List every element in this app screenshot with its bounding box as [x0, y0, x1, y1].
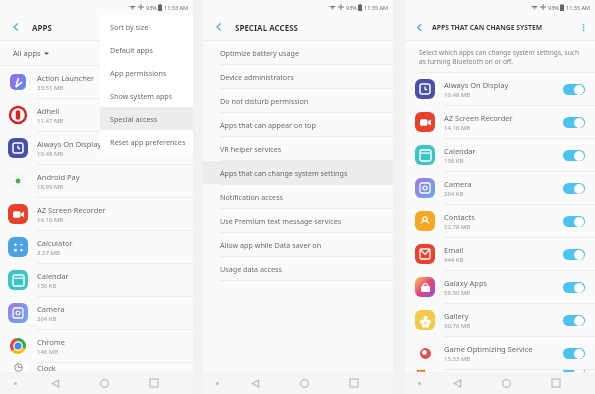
staticText: Default apps: [110, 45, 153, 55]
button[interactable]: Default apps: [100, 38, 193, 61]
button[interactable]: Sort by size: [100, 15, 193, 38]
staticText: Adhell: [37, 106, 60, 116]
button[interactable]: Galaxy Apps: [405, 271, 595, 303]
button[interactable]: Back: [433, 372, 482, 394]
button[interactable]: Toggle on: [563, 348, 585, 359]
staticText: App permissions: [110, 68, 167, 78]
button[interactable]: Optimize battery usage: [203, 41, 393, 64]
button[interactable]: Toggle on: [563, 150, 585, 161]
staticText: Select which apps can change system sett…: [419, 48, 580, 66]
button[interactable]: Game Optimizing Service: [405, 337, 595, 369]
staticText: 93%: [146, 4, 157, 11]
staticText: 15.53 MB: [444, 355, 471, 363]
button[interactable]: Calculator: [0, 231, 193, 263]
button[interactable]: Always On Display: [405, 73, 595, 105]
button[interactable]: Camera: [0, 297, 193, 329]
staticText: APPS THAT CAN CHANGE SYSTEM SETTINGS: [432, 23, 576, 32]
staticText: Reset app preferences: [110, 137, 186, 147]
staticText: Action Launcher: [37, 73, 95, 83]
button[interactable]: Google: [405, 370, 595, 372]
staticText: 59.50 MB: [444, 289, 471, 297]
staticText: Always On Display: [444, 80, 509, 90]
button[interactable]: Use Premium text message services: [203, 209, 393, 232]
staticText: Special access: [110, 114, 158, 124]
button[interactable]: Clock: [0, 363, 193, 372]
button[interactable]: Special access: [100, 107, 193, 130]
button[interactable]: Chrome: [0, 330, 193, 362]
button[interactable]: Usage data access: [203, 257, 393, 280]
button[interactable]: Back: [211, 19, 227, 35]
staticText: Gallery: [444, 311, 469, 321]
button[interactable]: Recents: [531, 372, 580, 394]
button[interactable]: Back: [412, 20, 426, 34]
staticText: Device administrators: [220, 72, 294, 82]
button[interactable]: Toggle on: [563, 370, 585, 372]
button[interactable]: Recents: [329, 372, 378, 394]
staticText: APPS: [32, 22, 52, 33]
staticText: 93%: [548, 4, 559, 11]
button[interactable]: Apps that can appear on top: [203, 113, 393, 136]
button[interactable]: Reset app preferences: [100, 130, 193, 153]
button[interactable]: Calendar: [0, 264, 193, 296]
button[interactable]: VR helper services: [203, 137, 393, 160]
staticText: 146 MB: [37, 348, 59, 356]
button[interactable]: Toggle on: [563, 84, 585, 95]
button[interactable]: Do not disturb permission: [203, 89, 393, 112]
staticText: 3.57 MB: [37, 249, 60, 257]
staticText: 264 KB: [37, 315, 57, 323]
button[interactable]: Back: [31, 372, 80, 394]
button[interactable]: More options: [576, 20, 590, 34]
button[interactable]: Toggle on: [563, 315, 585, 326]
staticText: 444 KB: [444, 256, 464, 264]
button[interactable]: Notification access: [203, 185, 393, 208]
staticText: Contacts: [444, 212, 475, 222]
button[interactable]: Home: [280, 372, 329, 394]
button[interactable]: Action Launcher: [0, 66, 193, 98]
button[interactable]: Toggle on: [563, 216, 585, 227]
button[interactable]: Toggle on: [563, 249, 585, 260]
button[interactable]: Home: [482, 372, 531, 394]
button[interactable]: Home: [80, 372, 129, 394]
button[interactable]: All apps: [0, 41, 193, 65]
staticText: 11:33 AM: [164, 4, 188, 11]
staticText: Do not disturb permission: [220, 96, 309, 106]
button[interactable]: App permissions: [100, 61, 193, 84]
staticText: SPECIAL ACCESS: [235, 22, 298, 33]
button[interactable]: Back: [8, 19, 24, 35]
button[interactable]: Gallery: [405, 304, 595, 336]
staticText: Optimize battery usage: [220, 48, 299, 58]
staticText: Chrome: [37, 337, 66, 347]
button[interactable]: Email: [405, 238, 595, 270]
staticText: Game Optimizing Service: [444, 344, 533, 354]
staticText: Email: [444, 245, 464, 255]
staticText: 30.76 MB: [444, 322, 471, 330]
button[interactable]: Allow app while Data saver on: [203, 233, 393, 256]
button[interactable]: Device administrators: [203, 65, 393, 88]
button[interactable]: Show system apps: [100, 84, 193, 107]
button[interactable]: Android Pay: [0, 165, 193, 197]
staticText: Calculator: [37, 238, 73, 248]
staticText: 156 KB: [37, 282, 57, 290]
button[interactable]: AZ Screen Recorder: [0, 198, 193, 230]
staticText: VR helper services: [220, 144, 282, 154]
staticText: Apps that can change system settings: [220, 168, 348, 178]
staticText: Galaxy Apps: [444, 278, 488, 288]
button[interactable]: Toggle on: [563, 282, 585, 293]
staticText: Calendar: [444, 146, 476, 156]
button[interactable]: AZ Screen Recorder: [405, 106, 595, 138]
staticText: All apps: [13, 48, 41, 58]
button[interactable]: Toggle on: [563, 183, 585, 194]
staticText: AZ Screen Recorder: [444, 113, 513, 123]
staticText: 14.16 MB: [37, 216, 64, 224]
button[interactable]: Back: [231, 372, 280, 394]
staticText: Show system apps: [110, 91, 173, 101]
button[interactable]: Toggle on: [563, 117, 585, 128]
button[interactable]: Contacts: [405, 205, 595, 237]
button[interactable]: Recents: [129, 372, 178, 394]
button[interactable]: Always On Display: [0, 132, 193, 164]
button[interactable]: Calendar: [405, 139, 595, 171]
button[interactable]: Camera: [405, 172, 595, 204]
button[interactable]: Apps that can change system settings: [203, 161, 393, 184]
button[interactable]: Adhell: [0, 99, 193, 131]
staticText: 93%: [346, 4, 357, 11]
